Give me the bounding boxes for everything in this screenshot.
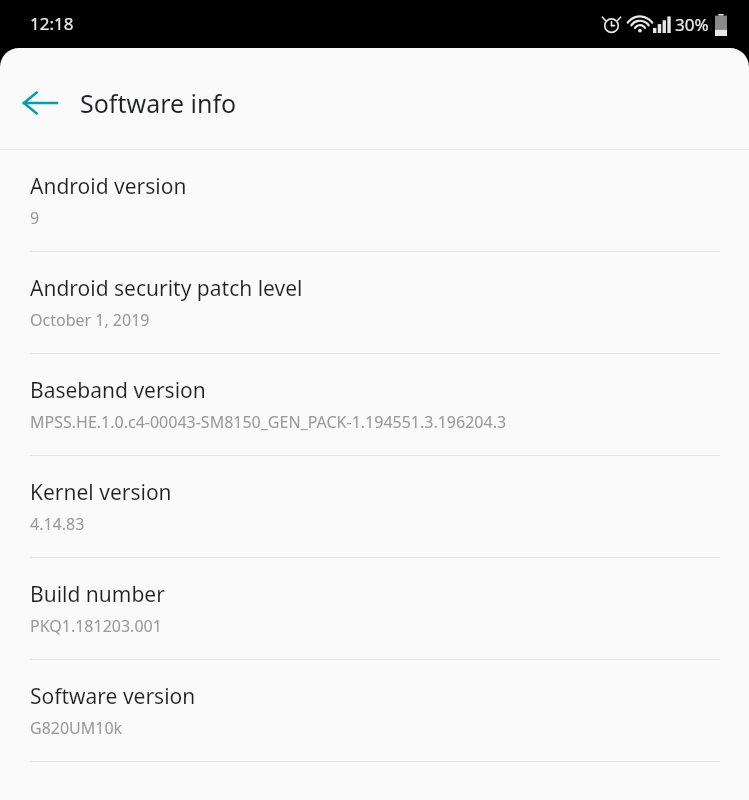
staticText: Software info (80, 86, 237, 120)
button[interactable]: Android version (0, 150, 749, 251)
button[interactable]: Android security patch level (0, 252, 749, 353)
button[interactable]: Kernel version (0, 456, 749, 557)
staticText: 12:18 (30, 12, 74, 35)
staticText: PKQ1.181203.001 (30, 615, 162, 637)
staticText: 9 (30, 207, 40, 229)
staticText: Android version (30, 172, 187, 201)
staticText: Software version (30, 682, 196, 711)
staticText: Baseband version (30, 376, 206, 405)
button[interactable]: Build number (0, 558, 749, 659)
button[interactable]: Baseband version (0, 354, 749, 455)
staticText: October 1, 2019 (30, 309, 150, 331)
button[interactable]: Software version (0, 660, 749, 761)
staticText: Kernel version (30, 478, 172, 507)
staticText: Build number (30, 580, 165, 609)
staticText: 30% (675, 13, 709, 36)
staticText: G820UM10k (30, 717, 123, 739)
staticText: MPSS.HE.1.0.c4-00043-SM8150_GEN_PACK-1.1… (30, 411, 507, 433)
staticText: 4.14.83 (30, 513, 85, 535)
button[interactable]: Back (14, 77, 66, 129)
staticText: Android security patch level (30, 274, 303, 303)
